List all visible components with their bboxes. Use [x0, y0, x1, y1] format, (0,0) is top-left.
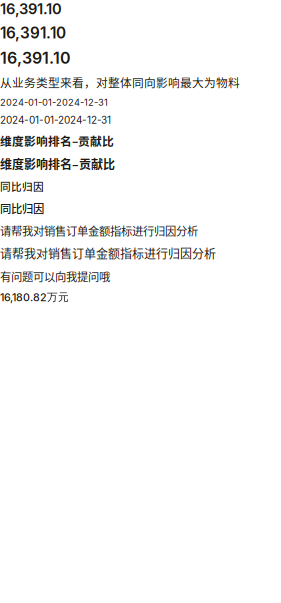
staticText: 维度影响排名–贡献比 [0, 132, 114, 149]
staticText: 有问题可以向我提问哦 [0, 268, 110, 284]
staticText: 同比归因 [0, 200, 44, 216]
staticText: 请帮我对销售订单金额指标进行归因分析 [0, 222, 198, 239]
staticText: 2024-01-01-2024-12-31 [0, 114, 111, 126]
staticText: 16,391.10 [0, 48, 71, 68]
staticText: 2024-01-01-2024-12-31 [0, 97, 108, 108]
staticText: 同比归因 [0, 178, 44, 194]
staticText: 维度影响排名–贡献比 [0, 155, 115, 172]
staticText: 请帮我对销售订单金额指标进行归因分析 [0, 245, 216, 262]
staticText: 16,391.10 [0, 0, 62, 18]
staticText: 从业务类型来看，对整体同向影响最大为物料 [0, 74, 240, 91]
staticText: 16,391.10 [0, 24, 66, 42]
staticText: 16,180.82万元 [0, 290, 69, 304]
